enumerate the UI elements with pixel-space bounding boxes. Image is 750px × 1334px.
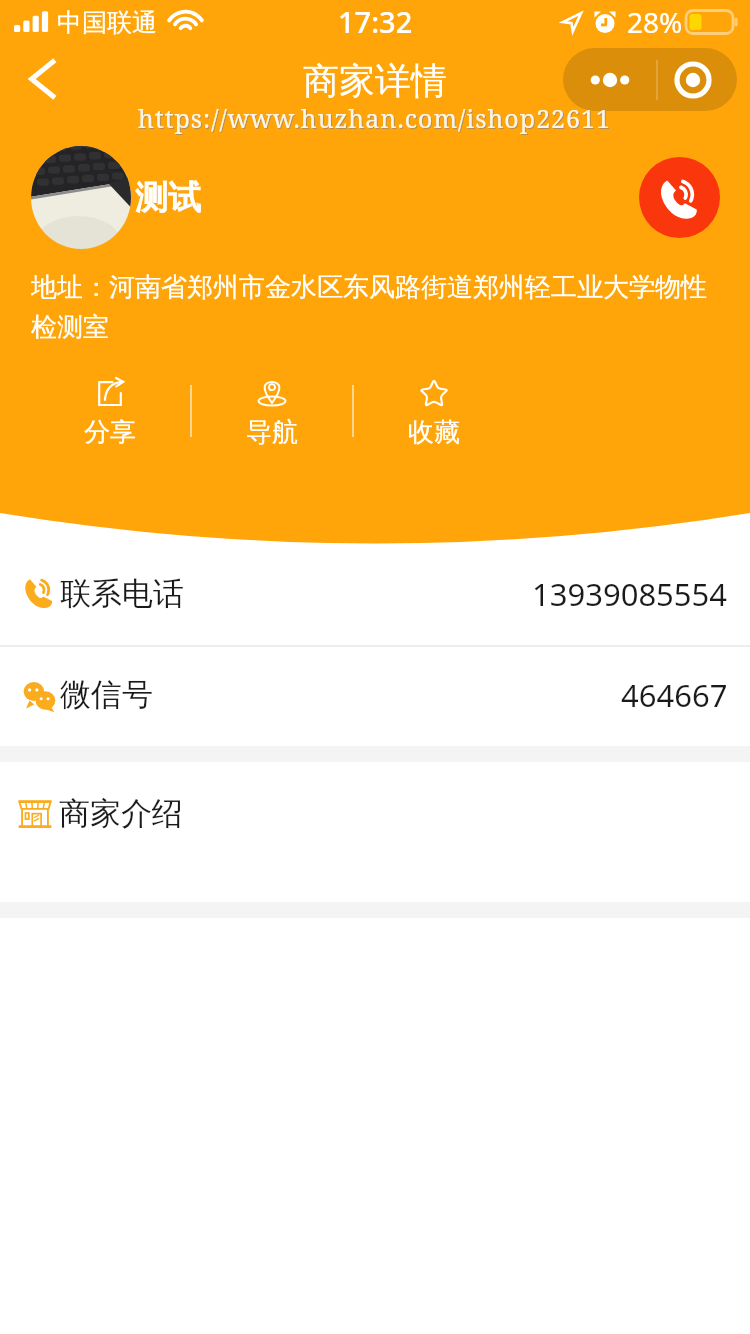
button[interactable]: More options: [563, 48, 656, 111]
button[interactable]: Call merchant: [639, 157, 720, 238]
button[interactable]: 导航: [222, 370, 322, 446]
button[interactable]: 收藏: [384, 370, 484, 446]
staticText: 联系电话: [60, 574, 184, 613]
button[interactable]: 微信号: [0, 647, 750, 746]
button[interactable]: 联系电话: [0, 546, 750, 645]
staticText: 测试: [135, 177, 201, 219]
staticText: 13939085554: [532, 573, 728, 615]
staticText: 商家介绍: [59, 794, 183, 833]
staticText: 微信号: [60, 675, 153, 714]
staticText: 464667: [621, 674, 728, 716]
staticText: 28%: [627, 3, 683, 41]
button[interactable]: Close mini program: [653, 48, 732, 111]
staticText: 分享: [84, 416, 136, 446]
staticText: 17:32: [338, 2, 413, 41]
button[interactable]: 商家介绍: [0, 790, 750, 836]
staticText: 收藏: [408, 416, 460, 446]
staticText: https://www.huzhan.com/ishop22611: [139, 102, 613, 136]
staticText: 地址：河南省郑州市金水区东风路街道郑州轻工业大学物性 检测室: [31, 271, 707, 344]
staticText: 中国联通: [57, 7, 157, 38]
button[interactable]: Back: [12, 49, 72, 109]
button[interactable]: 分享: [60, 370, 160, 446]
staticText: 商家详情: [303, 58, 447, 103]
staticText: https://www.huzhan.com/ishop22611: [138, 101, 612, 135]
staticText: 导航: [246, 416, 298, 446]
